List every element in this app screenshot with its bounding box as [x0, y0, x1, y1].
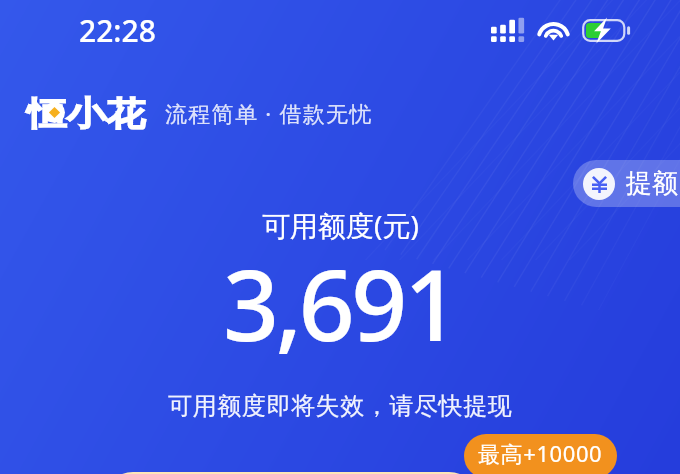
other: Battery charging [582, 19, 630, 42]
button[interactable]: 提额 [573, 160, 680, 207]
staticText: 最高+10000 [478, 438, 603, 468]
other: Wi-Fi [539, 19, 568, 42]
staticText: 恒小花 [27, 93, 145, 135]
staticText: 22:28 [79, 10, 156, 51]
staticText: 可用额度(元) [262, 206, 419, 244]
staticText: 3,691 [223, 236, 457, 369]
other: Signal strength [491, 19, 525, 42]
button[interactable]: 最高+10000 [464, 434, 617, 474]
staticText: 流程简单 · 借款无忧 [165, 98, 373, 128]
staticText: 提额 [626, 167, 678, 200]
staticText: 可用额度即将失效，请尽快提现 [168, 391, 513, 421]
button[interactable] [103, 472, 479, 474]
